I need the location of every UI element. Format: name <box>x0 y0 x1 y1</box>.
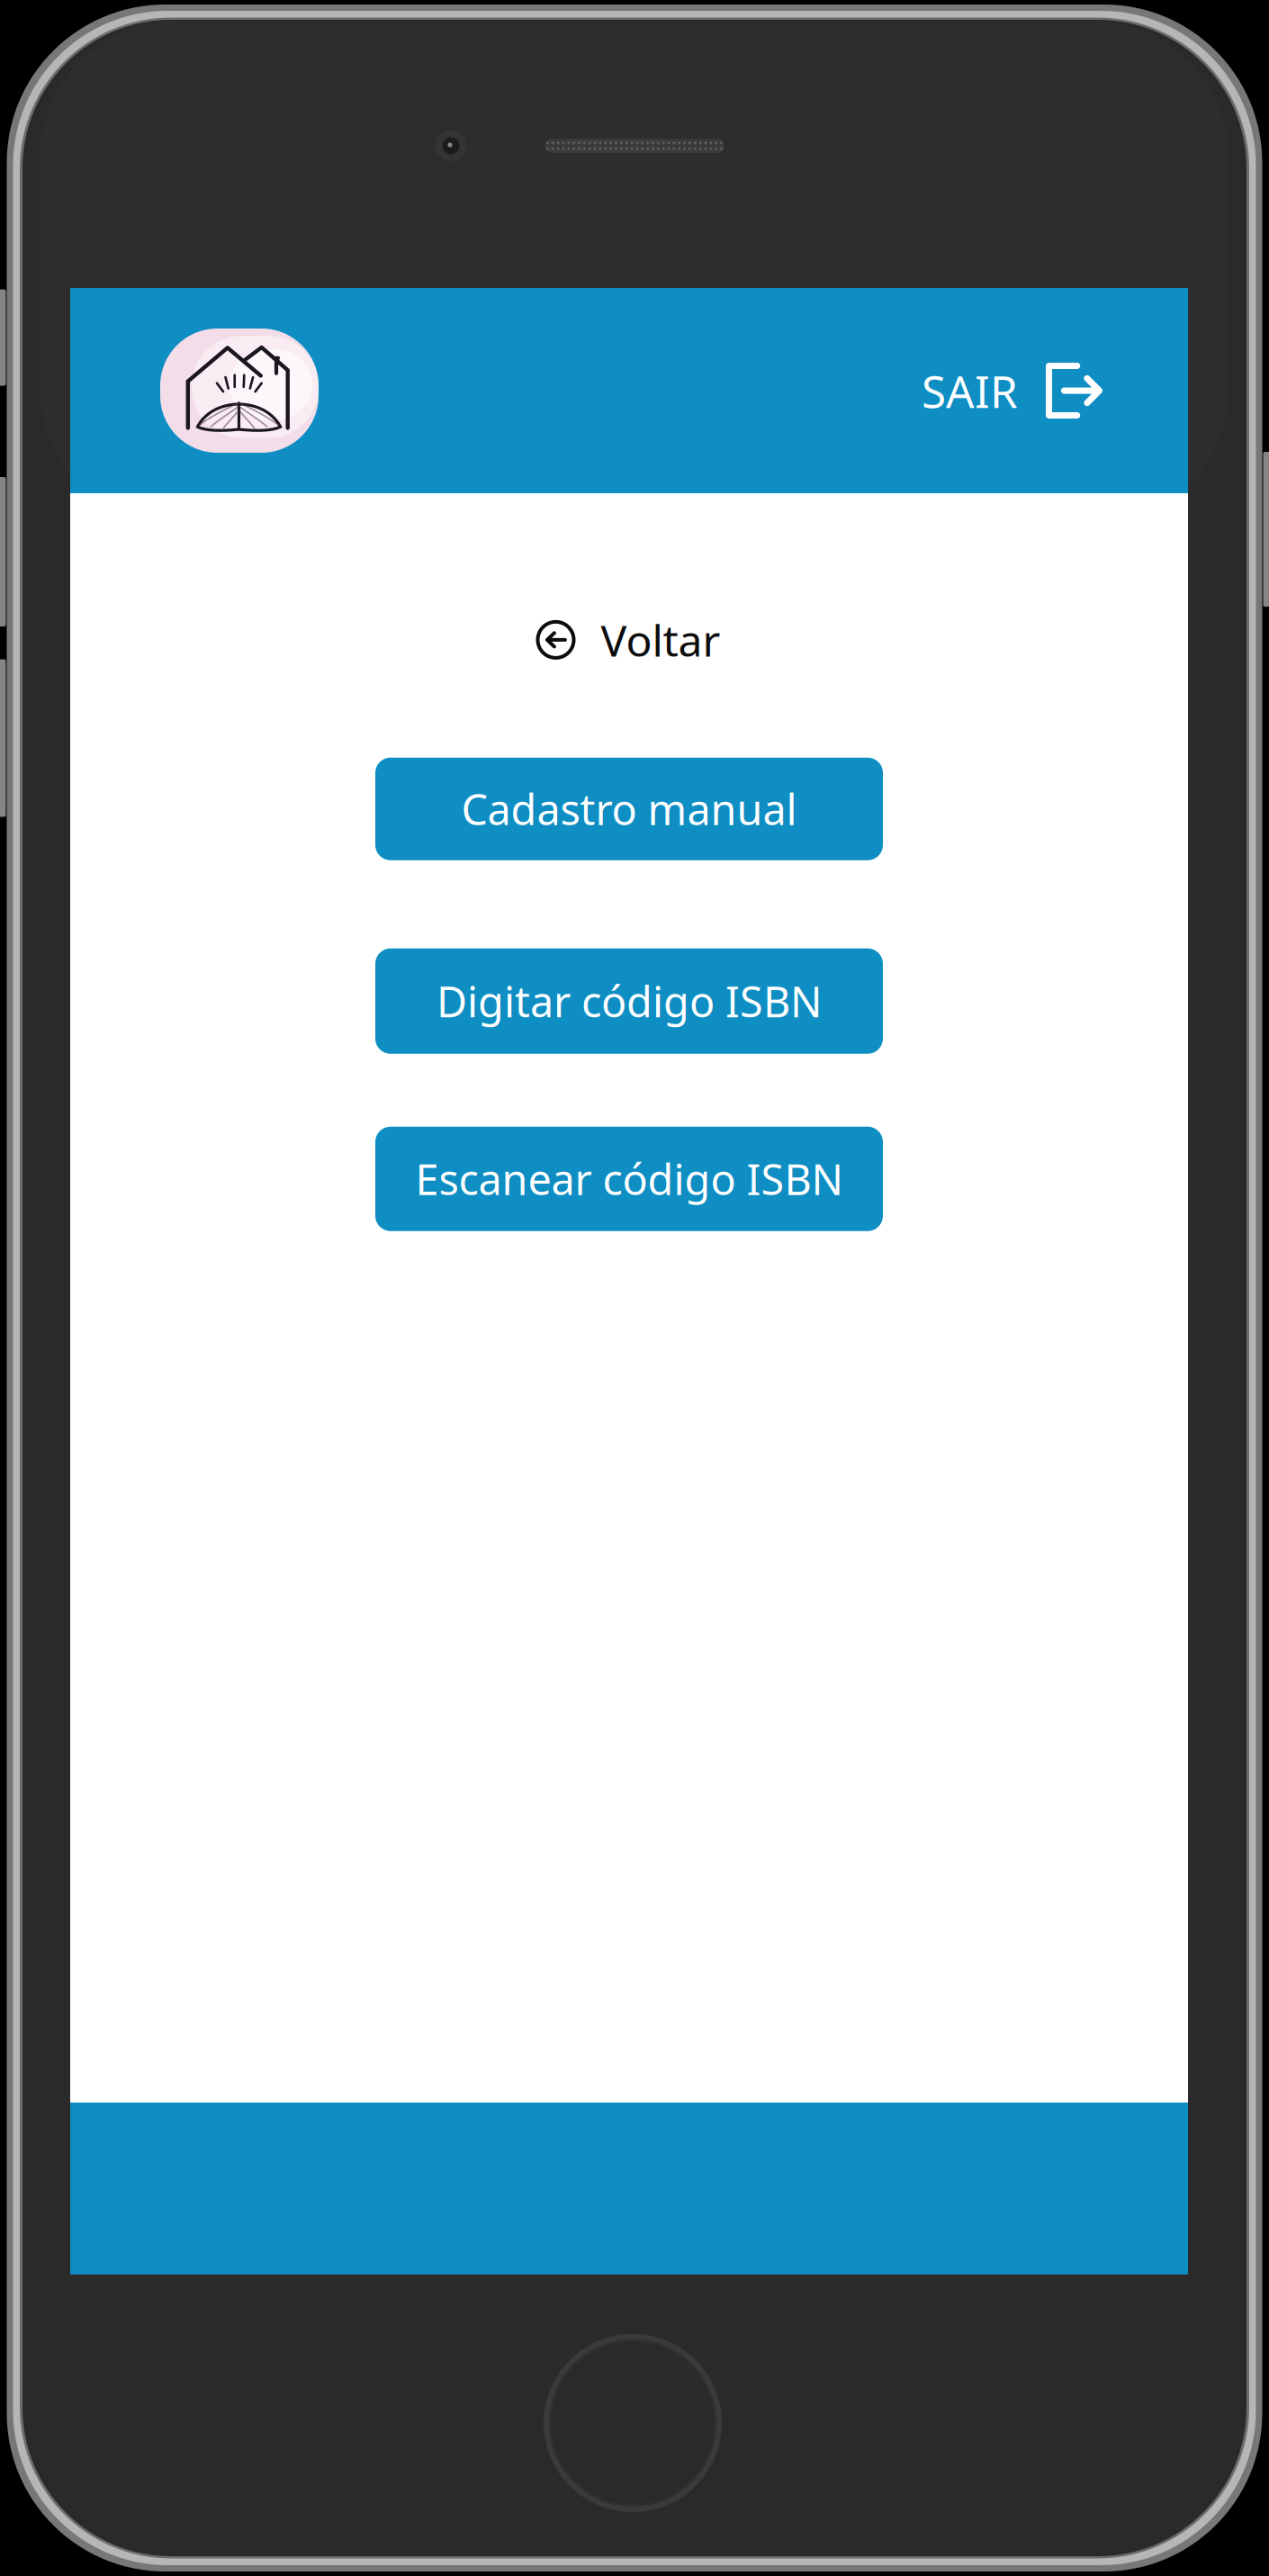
button[interactable]: Voltar <box>514 593 744 686</box>
staticText: Cadastro manual <box>461 781 797 837</box>
button[interactable]: Cadastro manual <box>375 758 883 860</box>
staticText: Voltar <box>601 611 720 668</box>
staticText: Digitar código ISBN <box>436 973 822 1029</box>
button[interactable]: Escanear código ISBN <box>375 1127 883 1231</box>
staticText: Escanear código ISBN <box>415 1151 843 1207</box>
button[interactable]: Digitar código ISBN <box>375 948 883 1054</box>
button[interactable]: SAIR — sair da conta <box>922 361 1102 420</box>
staticText: SAIR <box>922 361 1018 420</box>
